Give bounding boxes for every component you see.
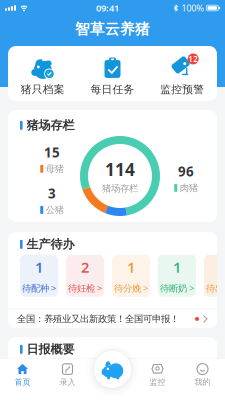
staticText: 114 <box>105 158 135 181</box>
staticText: 全国：养殖业又出新政策！全国可申报！ <box>17 313 179 325</box>
staticText: 待妊检 > <box>68 282 102 294</box>
staticText: 100% <box>181 2 204 14</box>
button[interactable]: 全国：养殖业又出新政策！全国可申报！ <box>8 309 217 328</box>
button[interactable]: 1 <box>20 255 58 297</box>
staticText: 每日任务 <box>90 83 134 96</box>
staticText: 录入 <box>59 377 75 387</box>
staticText: 肉猪 <box>180 182 198 194</box>
button[interactable]: 猪只档案 <box>8 57 78 96</box>
button[interactable]: 1 <box>112 255 150 297</box>
staticText: 首页 <box>14 377 30 387</box>
staticText: 公猪 <box>46 204 64 216</box>
staticText: 1 <box>127 257 135 277</box>
button[interactable]: 快捷录入 <box>94 351 131 388</box>
button[interactable]: 12 <box>147 57 217 96</box>
staticText: 96 <box>178 162 194 180</box>
staticText: 猪场存栏 <box>102 183 138 194</box>
button[interactable]: 首页 <box>2 357 42 393</box>
button[interactable]: 录入 <box>47 357 87 393</box>
staticText: 待配种 > <box>22 282 56 294</box>
staticText: 生产待办 <box>27 237 75 252</box>
staticText: 我的 <box>194 377 210 387</box>
staticText: 待断奶 > <box>160 282 194 294</box>
staticText: 智草云养猪 <box>75 20 150 38</box>
staticText: 猪场存栏 <box>27 118 75 133</box>
staticText: 15 <box>44 143 60 161</box>
staticText: 待分娩 > <box>114 282 148 294</box>
staticText: 2 <box>81 257 89 277</box>
staticText: 猪只档案 <box>21 83 65 96</box>
staticText: 监控预警 <box>160 83 204 96</box>
button[interactable]: 我的 <box>182 357 222 393</box>
button[interactable]: 监控 <box>137 357 177 393</box>
staticText: 日报概要 <box>27 342 75 357</box>
button[interactable]: 2 <box>66 255 104 297</box>
staticText: 待出栏 > <box>206 282 225 294</box>
staticText: 1 <box>35 257 43 277</box>
staticText: 12 <box>188 54 198 64</box>
staticText: 母猪 <box>46 163 64 175</box>
staticText: 09:41 <box>96 2 119 14</box>
button[interactable]: 2 <box>204 255 225 297</box>
button[interactable]: 每日任务 <box>78 57 147 96</box>
staticText: 1 <box>173 257 181 277</box>
staticText: 3 <box>48 184 56 202</box>
button[interactable]: 1 <box>158 255 196 297</box>
staticText: 监控 <box>149 377 165 387</box>
